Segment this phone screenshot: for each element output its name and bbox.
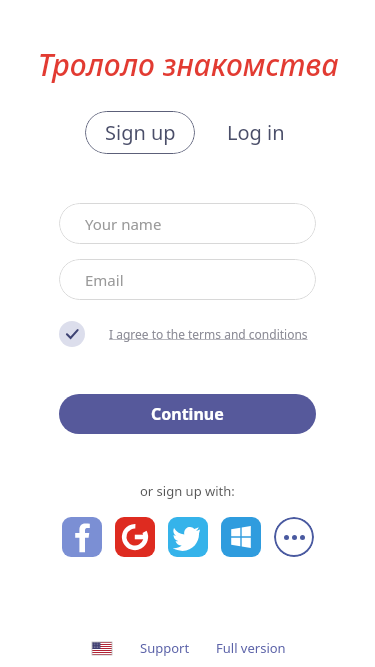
staticText: Continue (151, 403, 224, 425)
button[interactable]: Support (138, 635, 192, 661)
button[interactable]: Full version (214, 635, 288, 661)
button[interactable]: I agree to the terms and conditions (59, 321, 316, 347)
staticText: Support (140, 639, 190, 657)
staticText: Your name (85, 214, 162, 234)
button[interactable]: Sign up with Google (115, 517, 155, 557)
button[interactable]: Change language (88, 638, 116, 659)
button[interactable]: Sign up with Twitter (168, 517, 208, 557)
staticText: Full version (216, 639, 286, 657)
button[interactable]: Sign up with Microsoft (221, 517, 261, 557)
staticText: Трололо знакомства (37, 44, 339, 85)
staticText: or sign up with: (140, 482, 235, 500)
staticText: I agree to the terms and conditions (109, 326, 308, 342)
button[interactable]: Log in (221, 111, 291, 154)
button[interactable]: More sign up options (274, 517, 314, 557)
button[interactable]: Sign up (85, 111, 195, 154)
staticText: Sign up (105, 119, 176, 146)
button[interactable]: Continue (59, 394, 316, 434)
button[interactable]: Email (59, 259, 316, 300)
button[interactable]: Sign up with Facebook (62, 517, 102, 557)
staticText: Log in (227, 119, 285, 146)
button[interactable]: Your name (59, 203, 316, 244)
staticText: Email (85, 270, 124, 290)
